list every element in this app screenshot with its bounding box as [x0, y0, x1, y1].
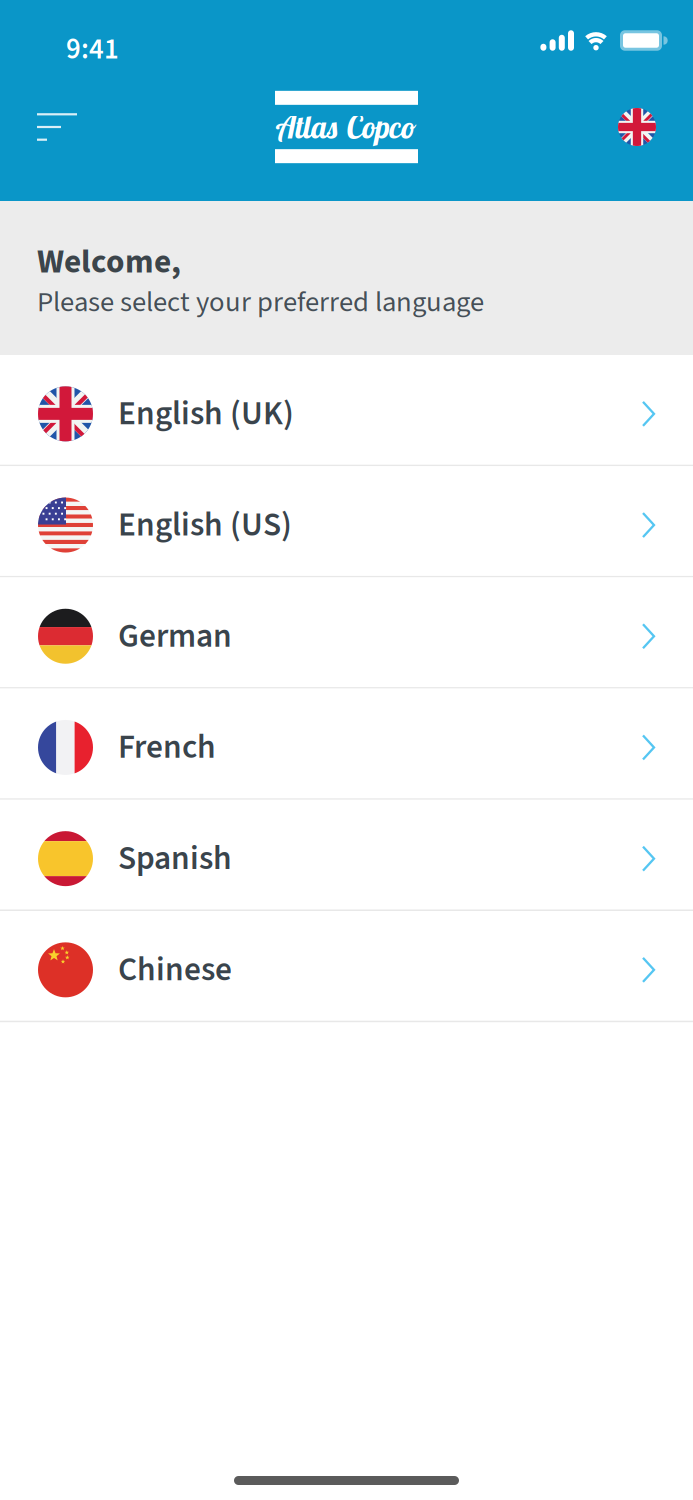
staticText: Spanish [118, 835, 232, 882]
staticText: French [118, 724, 216, 771]
button[interactable]: English (UK) [0, 355, 693, 466]
staticText: English (US) [118, 501, 292, 549]
staticText: Please select your preferred language [37, 282, 484, 323]
staticText: Atlas Copco [277, 108, 416, 146]
button[interactable]: English (US) [0, 466, 693, 577]
staticText: English (UK) [118, 390, 294, 438]
button[interactable]: French [0, 689, 693, 800]
button[interactable]: Menu [37, 113, 77, 141]
staticText: 9:41 [66, 29, 119, 70]
staticText: Welcome, [37, 238, 181, 286]
button[interactable]: German [0, 577, 693, 689]
button[interactable]: Spanish [0, 800, 693, 911]
staticText: Chinese [118, 946, 232, 994]
button[interactable]: Change language [618, 108, 656, 146]
staticText: German [118, 612, 232, 660]
button[interactable]: Chinese [0, 911, 693, 1022]
